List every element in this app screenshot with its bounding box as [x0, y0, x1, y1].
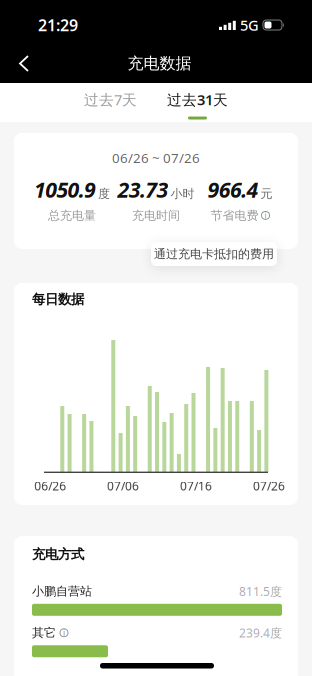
staticText: 过去7天	[84, 90, 137, 109]
staticText: 06/26	[34, 478, 66, 494]
staticText: 其它	[32, 625, 56, 640]
staticText: i	[264, 210, 266, 221]
staticText: 23.73	[118, 175, 168, 203]
staticText: 充电数据	[127, 54, 191, 73]
staticText: 811.5度	[239, 583, 282, 599]
staticText: 通过充电卡抵扣的费用	[154, 247, 274, 261]
button[interactable]: 过去7天	[84, 83, 137, 122]
staticText: 过去31天	[167, 90, 228, 109]
staticText: 239.4度	[239, 625, 282, 641]
staticText: 充电方式	[32, 546, 84, 562]
button[interactable]: 过去31天	[167, 83, 228, 122]
staticText: 966.4	[208, 175, 258, 203]
staticText: 元	[260, 186, 272, 201]
staticText: 充电时间	[132, 208, 180, 223]
staticText: 小鹏自营站	[32, 584, 92, 599]
staticText: 07/16	[180, 478, 212, 494]
staticText: 06/26 ~ 07/26	[112, 149, 200, 167]
staticText: i	[63, 627, 65, 638]
staticText: 21:29	[38, 14, 78, 36]
staticText: 07/06	[107, 478, 139, 494]
button[interactable]: Back	[0, 44, 29, 83]
staticText: 节省电费	[210, 208, 258, 223]
staticText: 总充电量	[48, 208, 96, 223]
button[interactable]: 说明	[60, 629, 68, 637]
button[interactable]: 说明	[261, 211, 269, 219]
staticText: 5G	[240, 15, 259, 35]
staticText: 每日数据	[32, 291, 84, 307]
staticText: 07/26	[253, 478, 285, 494]
staticText: 1050.9	[34, 175, 96, 203]
staticText: 小时	[170, 186, 194, 201]
staticText: 度	[98, 186, 110, 201]
